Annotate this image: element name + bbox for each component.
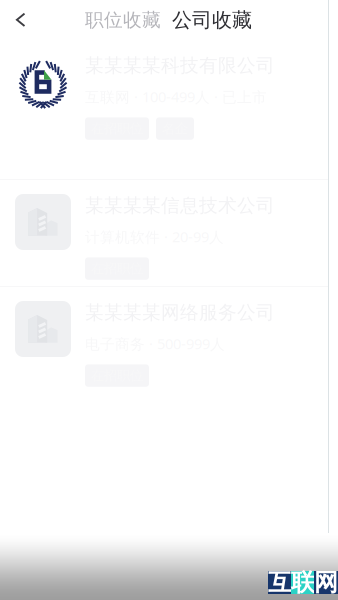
staticText: 某某某某信息技术公司 [85, 194, 275, 217]
staticText: 联 [291, 568, 315, 597]
button[interactable]: 职位收藏 [82, 0, 164, 40]
staticText: 网 [314, 568, 338, 597]
button[interactable]: Back [0, 0, 41, 40]
button[interactable]: 公司收藏 [171, 0, 253, 40]
staticText: 职位收藏 [85, 8, 161, 31]
staticText: 某某某某科技有限公司 [85, 54, 275, 77]
staticText: 某某某某网络服务公司 [85, 301, 275, 324]
button[interactable]: 某某某某网络服务公司 [0, 287, 338, 393]
button[interactable]: 某某某某科技有限公司 [0, 40, 338, 179]
staticText: 公司收藏 [172, 8, 252, 32]
button[interactable]: 某某某某信息技术公司 [0, 180, 338, 286]
staticText: 互 [268, 568, 292, 597]
